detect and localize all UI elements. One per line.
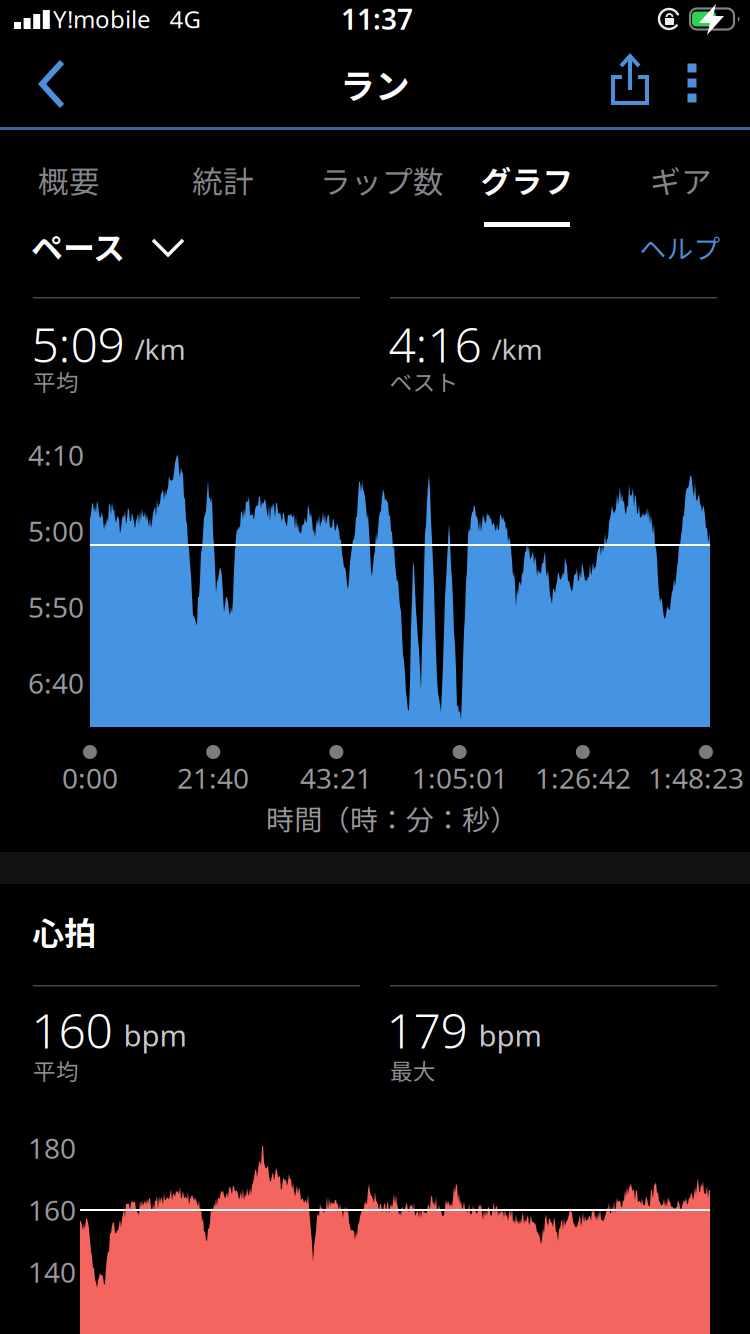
staticText: 4G [169,3,200,35]
staticText: 21:40 [177,759,249,797]
staticText: 5:09 [31,312,124,376]
staticText: 心拍 [32,908,96,954]
button[interactable]: Back [35,56,69,112]
staticText: 160 [31,998,112,1062]
button[interactable]: 概要 [38,158,100,202]
staticText: 6:40 [28,664,84,702]
button[interactable]: ギア [650,158,712,202]
button[interactable]: 統計 [192,158,254,202]
staticText: ラン [340,59,410,109]
staticText: 統計 [192,158,254,202]
staticText: ペース [31,223,125,269]
staticText: 最大 [390,1054,436,1086]
staticText: グラフ [480,158,573,202]
staticText: 180 [28,1129,76,1167]
staticText: 179 [386,998,467,1062]
staticText: 5:00 [28,512,84,550]
button[interactable]: More [681,63,702,102]
staticText: 概要 [38,158,100,202]
staticText: 0:00 [62,759,118,797]
staticText: 4:10 [28,436,84,474]
button[interactable]: ペース [31,228,193,266]
staticText: ヘルプ [639,228,720,266]
staticText: 4:16 [388,312,481,376]
staticText: 平均 [33,365,79,397]
staticText: 平均 [33,1054,79,1086]
staticText: 43:21 [300,759,372,797]
staticText: 160 [28,1191,76,1229]
staticText: Y!mobile [53,3,151,35]
staticText: ギア [650,158,712,202]
staticText: ラップ数 [320,158,444,202]
staticText: 1:48:23 [648,759,744,797]
staticText: 時間（時：分：秒） [266,798,518,838]
staticText: 1:26:42 [535,759,631,797]
staticText: bpm [478,1015,541,1054]
staticText: bpm [123,1015,186,1054]
button[interactable]: グラフ [480,158,573,202]
staticText: 140 [28,1253,76,1291]
button[interactable]: ヘルプ [639,228,720,266]
button[interactable]: ラップ数 [320,158,444,202]
button[interactable]: Share [608,52,652,108]
staticText: 1:05:01 [412,759,508,797]
staticText: ベスト [389,365,458,397]
staticText: 11:37 [341,0,413,38]
staticText: /km [491,330,542,368]
staticText: /km [134,330,185,368]
staticText: 5:50 [28,588,84,626]
